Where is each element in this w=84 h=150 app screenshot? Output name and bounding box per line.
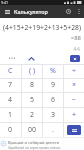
button[interactable]: 3 — [43, 107, 63, 122]
staticText: Заработай на играх прямо сейчас — [8, 146, 61, 150]
button[interactable]: − — [64, 92, 84, 107]
staticText: % — [50, 66, 56, 76]
button[interactable]: × — [64, 78, 84, 92]
staticText: 9 — [51, 80, 56, 90]
staticText: 0 — [8, 125, 13, 135]
staticText: Калькулятор — [14, 8, 48, 15]
button[interactable]: 1 — [0, 107, 21, 122]
button[interactable]: More options — [74, 5, 84, 18]
button[interactable]: + — [64, 107, 84, 122]
button[interactable]: 8 — [22, 78, 42, 92]
staticText: . — [52, 125, 54, 135]
staticText: 00 — [28, 125, 37, 135]
button[interactable] — [64, 122, 84, 137]
staticText: 44 — [3, 45, 80, 53]
button[interactable]: % — [43, 64, 63, 78]
staticText: Вращай и собирай деньги — [8, 140, 59, 145]
button[interactable]: 00 — [22, 122, 42, 137]
staticText: 1 — [8, 110, 13, 120]
staticText: × — [72, 80, 77, 90]
button[interactable]: 0 — [0, 122, 21, 137]
button[interactable]: Backspace — [70, 55, 80, 62]
button[interactable]: 2 — [22, 107, 42, 122]
staticText: (4+15+2+19+2+13+5+28) — [3, 23, 81, 32]
staticText: ( ) — [29, 66, 36, 76]
staticText: 4 — [8, 95, 13, 105]
button[interactable]: 7 — [0, 78, 21, 92]
button[interactable]: ÷ — [64, 64, 84, 78]
staticText: ÷ — [72, 66, 77, 76]
button[interactable]: 5 — [22, 92, 42, 107]
staticText: 6 — [51, 95, 56, 105]
button[interactable]: C — [0, 64, 21, 78]
staticText: 2 — [30, 110, 35, 120]
button[interactable]: More — [6, 53, 17, 63]
staticText: C — [8, 66, 13, 76]
button[interactable]: 4 — [0, 92, 21, 107]
staticText: 9:41 — [1, 0, 8, 5]
button[interactable]: . — [43, 122, 63, 137]
button[interactable]: 9 — [43, 78, 63, 92]
staticText: 7 — [8, 80, 13, 90]
button[interactable]: 6 — [43, 92, 63, 107]
staticText: 5 — [30, 95, 35, 105]
staticText: 3 — [51, 110, 56, 120]
staticText: − — [72, 95, 77, 105]
button[interactable]: ( ) — [22, 64, 42, 78]
staticText: + — [72, 110, 77, 120]
button[interactable]: Expand — [26, 53, 37, 63]
staticText: 8 — [30, 80, 35, 90]
staticText: =88 — [3, 34, 81, 42]
button[interactable]: Menu — [0, 5, 14, 18]
button[interactable]: History — [62, 5, 74, 18]
